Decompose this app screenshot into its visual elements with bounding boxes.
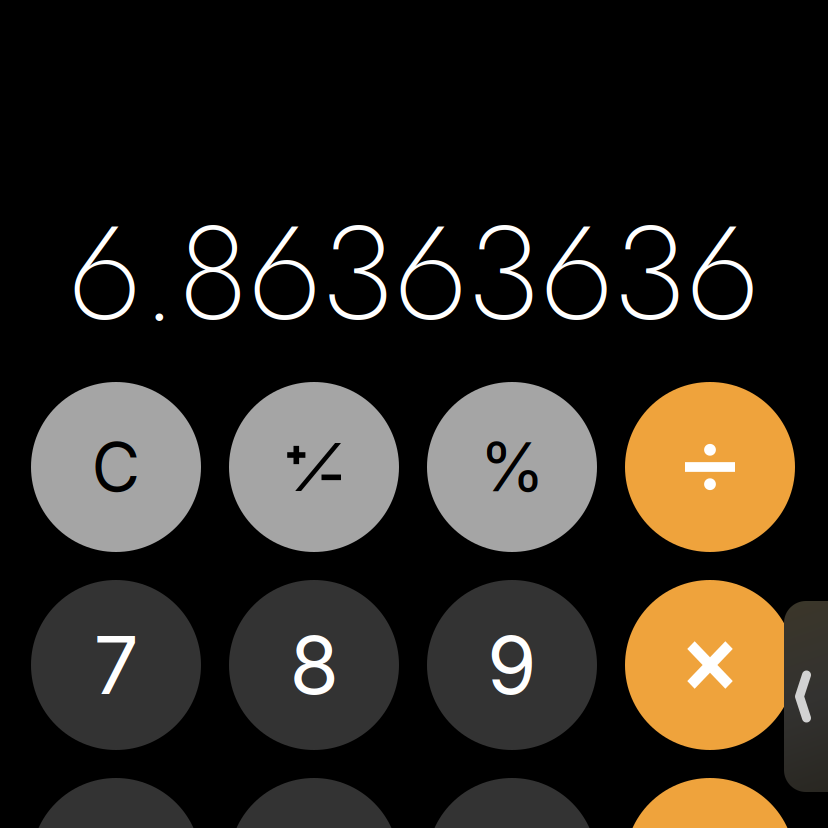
button[interactable]: 5 xyxy=(229,778,399,828)
button[interactable]: 4 xyxy=(31,778,201,828)
button[interactable]: Back xyxy=(784,601,828,792)
button[interactable]: C xyxy=(31,382,201,552)
button[interactable]: Subtract xyxy=(625,778,795,828)
staticText: 6.86363636 xyxy=(68,177,759,369)
button[interactable]: Toggle sign xyxy=(229,382,399,552)
button[interactable]: 6 xyxy=(427,778,597,828)
staticText: 7 xyxy=(93,617,138,713)
staticText: 8 xyxy=(289,617,338,713)
button[interactable]: Multiply xyxy=(625,580,795,750)
button[interactable]: Divide xyxy=(625,382,795,552)
staticText: 9 xyxy=(487,617,537,713)
button[interactable]: 7 xyxy=(31,580,201,750)
staticText: C xyxy=(91,427,140,507)
button[interactable]: % xyxy=(427,382,597,552)
button[interactable]: 8 xyxy=(229,580,399,750)
button[interactable]: 9 xyxy=(427,580,597,750)
staticText: % xyxy=(479,427,544,507)
